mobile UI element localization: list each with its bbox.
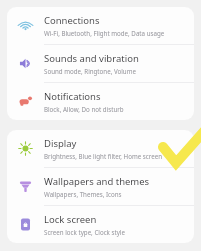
staticText: Notifications xyxy=(44,90,101,103)
staticText: Wi-Fi, Bluetooth, Flight mode, Data usag… xyxy=(44,29,165,37)
button[interactable]: Notifications xyxy=(7,83,194,120)
staticText: Brightness, Blue light filter, Home scre… xyxy=(44,152,163,160)
staticText: Lock screen xyxy=(44,213,97,226)
button[interactable]: Connections xyxy=(7,7,194,45)
staticText: Display xyxy=(44,137,77,150)
staticText: Sound mode, Ringtone, Volume xyxy=(44,67,136,75)
button[interactable]: Wallpapers and themes xyxy=(7,168,194,206)
button[interactable]: Sounds and vibration xyxy=(7,45,194,83)
staticText: Wallpapers, Themes, Icons xyxy=(44,190,122,198)
staticText: Wallpapers and themes xyxy=(44,175,150,188)
staticText: Connections xyxy=(44,14,100,27)
other: Highlighted Display xyxy=(0,0,201,251)
button[interactable]: Lock screen xyxy=(7,206,194,243)
staticText: Sounds and vibration xyxy=(44,52,139,65)
staticText: Block, Allow, Do not disturb xyxy=(44,105,124,113)
button[interactable]: Display xyxy=(7,130,194,168)
staticText: Screen lock type, Clock style xyxy=(44,228,125,236)
